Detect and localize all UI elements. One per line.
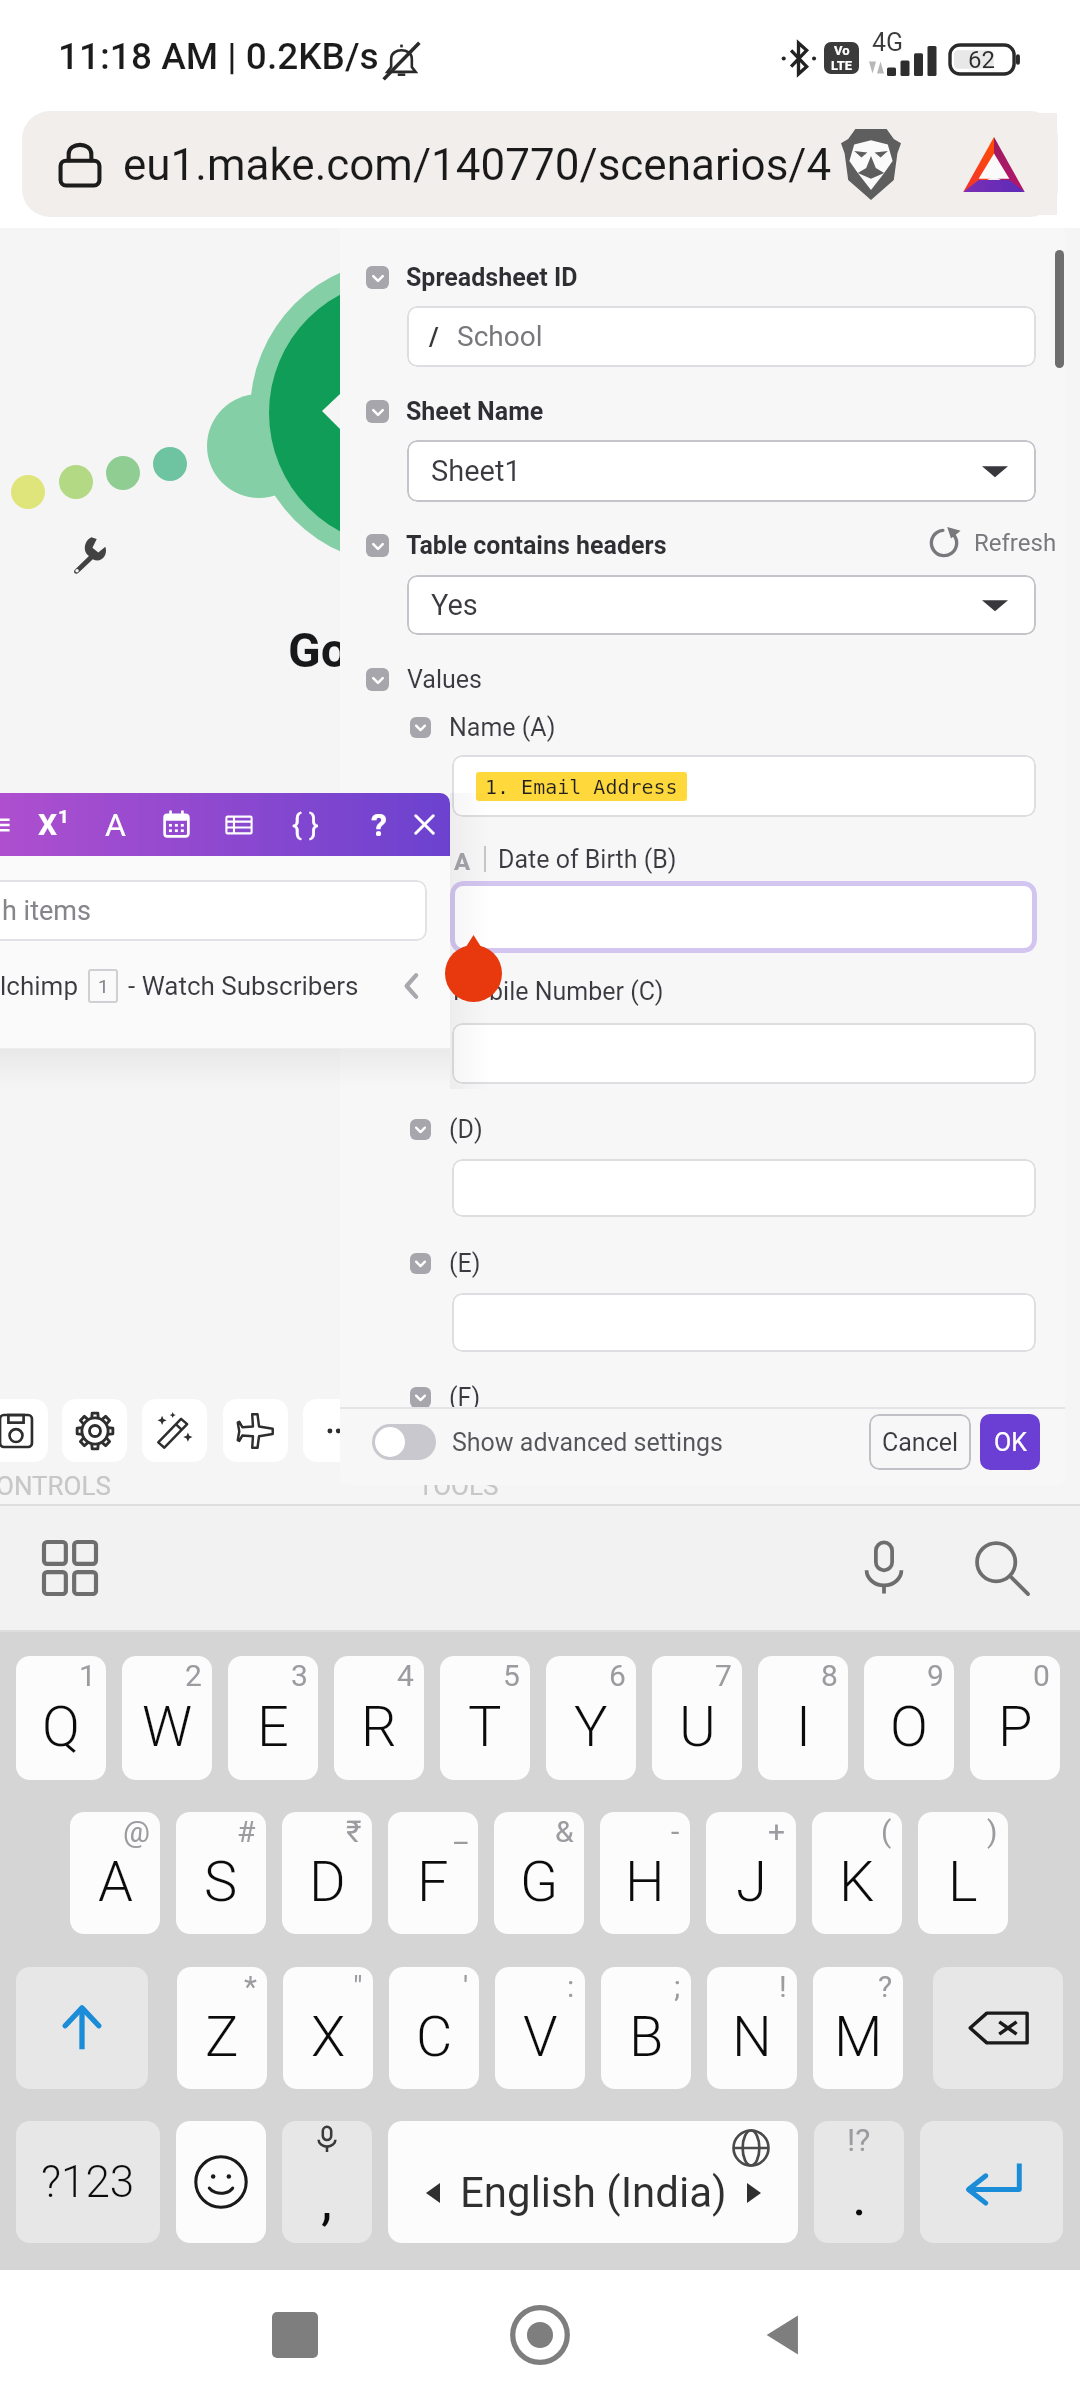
button[interactable]: 9 <box>864 1656 954 1780</box>
button[interactable] <box>452 1023 1036 1084</box>
staticText: English (India) <box>460 2168 727 2217</box>
button[interactable]: Tool <box>0 1399 48 1462</box>
button[interactable]: Insert <box>400 793 448 856</box>
button[interactable]: Shift <box>16 1967 148 2089</box>
staticText: X <box>311 2004 346 2070</box>
staticText: J <box>736 1849 767 1915</box>
button[interactable]: ( <box>812 1812 902 1934</box>
button[interactable]: _ <box>388 1812 478 1934</box>
staticText: Z <box>205 2004 239 2070</box>
button[interactable]: : <box>495 1967 585 2089</box>
button[interactable]: ?123 <box>16 2121 160 2243</box>
button[interactable]: Tool <box>62 1399 127 1462</box>
button[interactable]: Insert <box>0 793 24 856</box>
button[interactable]: Brave Shields <box>829 122 913 206</box>
staticText: { } <box>292 808 319 842</box>
button[interactable]: Emoji <box>176 2121 266 2243</box>
button[interactable]: Back <box>740 2290 830 2380</box>
button[interactable]: Insert { } <box>281 793 329 856</box>
button[interactable]: ' <box>389 1967 479 2089</box>
button[interactable]: * <box>177 1967 267 2089</box>
button[interactable]: Toggle Table contains headers <box>366 534 389 557</box>
button[interactable]: Toggle (F) <box>410 1387 431 1408</box>
button[interactable]: 3 <box>228 1656 318 1780</box>
staticText: K <box>839 1849 875 1915</box>
button[interactable]: # <box>176 1812 266 1934</box>
staticText: 1 <box>58 805 69 827</box>
button[interactable]: Toggle (D) <box>410 1119 431 1140</box>
button[interactable]: Insert <box>215 793 263 856</box>
button[interactable]: 8 <box>758 1656 848 1780</box>
button[interactable]: Comma <box>282 2121 372 2243</box>
button[interactable]: Insert <box>152 793 200 856</box>
button[interactable]: Home <box>495 2290 585 2380</box>
button[interactable]: Search <box>956 1522 1048 1614</box>
button[interactable]: Enter <box>920 2121 1063 2243</box>
button[interactable]: 0 <box>970 1656 1060 1780</box>
button[interactable]: Cancel <box>869 1414 971 1470</box>
button[interactable]: 1 <box>16 1656 106 1780</box>
staticText: - Watch Subscribers <box>128 971 359 1001</box>
button[interactable]: ₹ <box>282 1812 372 1934</box>
staticText: Sheet1 <box>431 454 521 488</box>
staticText: TOOLS <box>418 1471 499 1501</box>
staticText: h items <box>2 895 91 927</box>
staticText: " <box>353 1969 363 2004</box>
button[interactable]: OK <box>980 1414 1040 1470</box>
button[interactable]: Insert ? <box>355 793 403 856</box>
button[interactable]: 5 <box>440 1656 530 1780</box>
button[interactable]: ) <box>918 1812 1008 1934</box>
button[interactable]: 1. Email Address <box>452 755 1036 817</box>
button[interactable]: eu1.make.com/140770/scenarios/4 <box>22 111 1058 217</box>
button[interactable]: - <box>600 1812 690 1934</box>
button[interactable]: 4 <box>334 1656 424 1780</box>
button[interactable]: 2 <box>122 1656 212 1780</box>
button[interactable]: Toggle Sheet Name <box>366 400 389 423</box>
button[interactable] <box>450 881 1037 953</box>
button[interactable]: Voice search <box>838 1522 930 1614</box>
button[interactable]: Show advanced settings toggle <box>372 1424 436 1460</box>
button[interactable]: Recent apps <box>250 2290 340 2380</box>
button[interactable]: Tool <box>142 1399 207 1462</box>
staticText: ? <box>878 1969 893 2004</box>
button[interactable]: 6 <box>546 1656 636 1780</box>
button[interactable]: ! <box>707 1967 797 2089</box>
button[interactable]: Tool <box>223 1399 288 1462</box>
staticText: Q <box>42 1694 80 1760</box>
button[interactable]: English (India) <box>388 2121 798 2243</box>
button[interactable]: h items <box>0 880 427 941</box>
button[interactable]: Tool <box>303 1399 368 1462</box>
button[interactable] <box>452 1293 1036 1352</box>
staticText: 2 <box>185 1658 202 1693</box>
staticText: 11:18 AM | 0.2KB/s <box>58 35 379 78</box>
button[interactable]: Sheet1 <box>407 440 1036 502</box>
button[interactable]: Toggle Spreadsheet ID <box>366 266 389 289</box>
button[interactable] <box>452 1159 1036 1217</box>
button[interactable]: Brave Rewards <box>952 122 1036 206</box>
button[interactable]: Period <box>814 2121 904 2243</box>
button[interactable]: ; <box>601 1967 691 2089</box>
button[interactable]: Backspace <box>933 1967 1063 2089</box>
staticText: 1. Email Address <box>485 775 678 798</box>
button[interactable]: Refresh <box>924 523 1061 563</box>
staticText: G <box>520 1849 559 1915</box>
button[interactable]: ? <box>813 1967 903 2089</box>
button[interactable]: Toggle Values <box>366 668 389 691</box>
staticText: School <box>457 320 543 353</box>
button[interactable]: Tabs <box>28 1526 112 1610</box>
staticText: Go <box>288 622 348 678</box>
button[interactable]: 7 <box>652 1656 742 1780</box>
button[interactable]: + <box>706 1812 796 1934</box>
button[interactable]: / <box>407 306 1036 367</box>
button[interactable]: Insert A <box>91 793 139 856</box>
staticText: # <box>237 1814 256 1849</box>
button[interactable]: @ <box>70 1812 160 1934</box>
button[interactable]: Yes <box>407 575 1036 635</box>
staticText: A <box>98 1849 133 1915</box>
button[interactable]: Toggle (E) <box>410 1253 431 1274</box>
button[interactable]: Insert X <box>29 793 77 856</box>
button[interactable]: & <box>494 1812 584 1934</box>
button[interactable]: Toggle Name (A) <box>410 717 431 738</box>
button[interactable]: lchimp <box>0 955 450 1017</box>
button[interactable]: " <box>283 1967 373 2089</box>
